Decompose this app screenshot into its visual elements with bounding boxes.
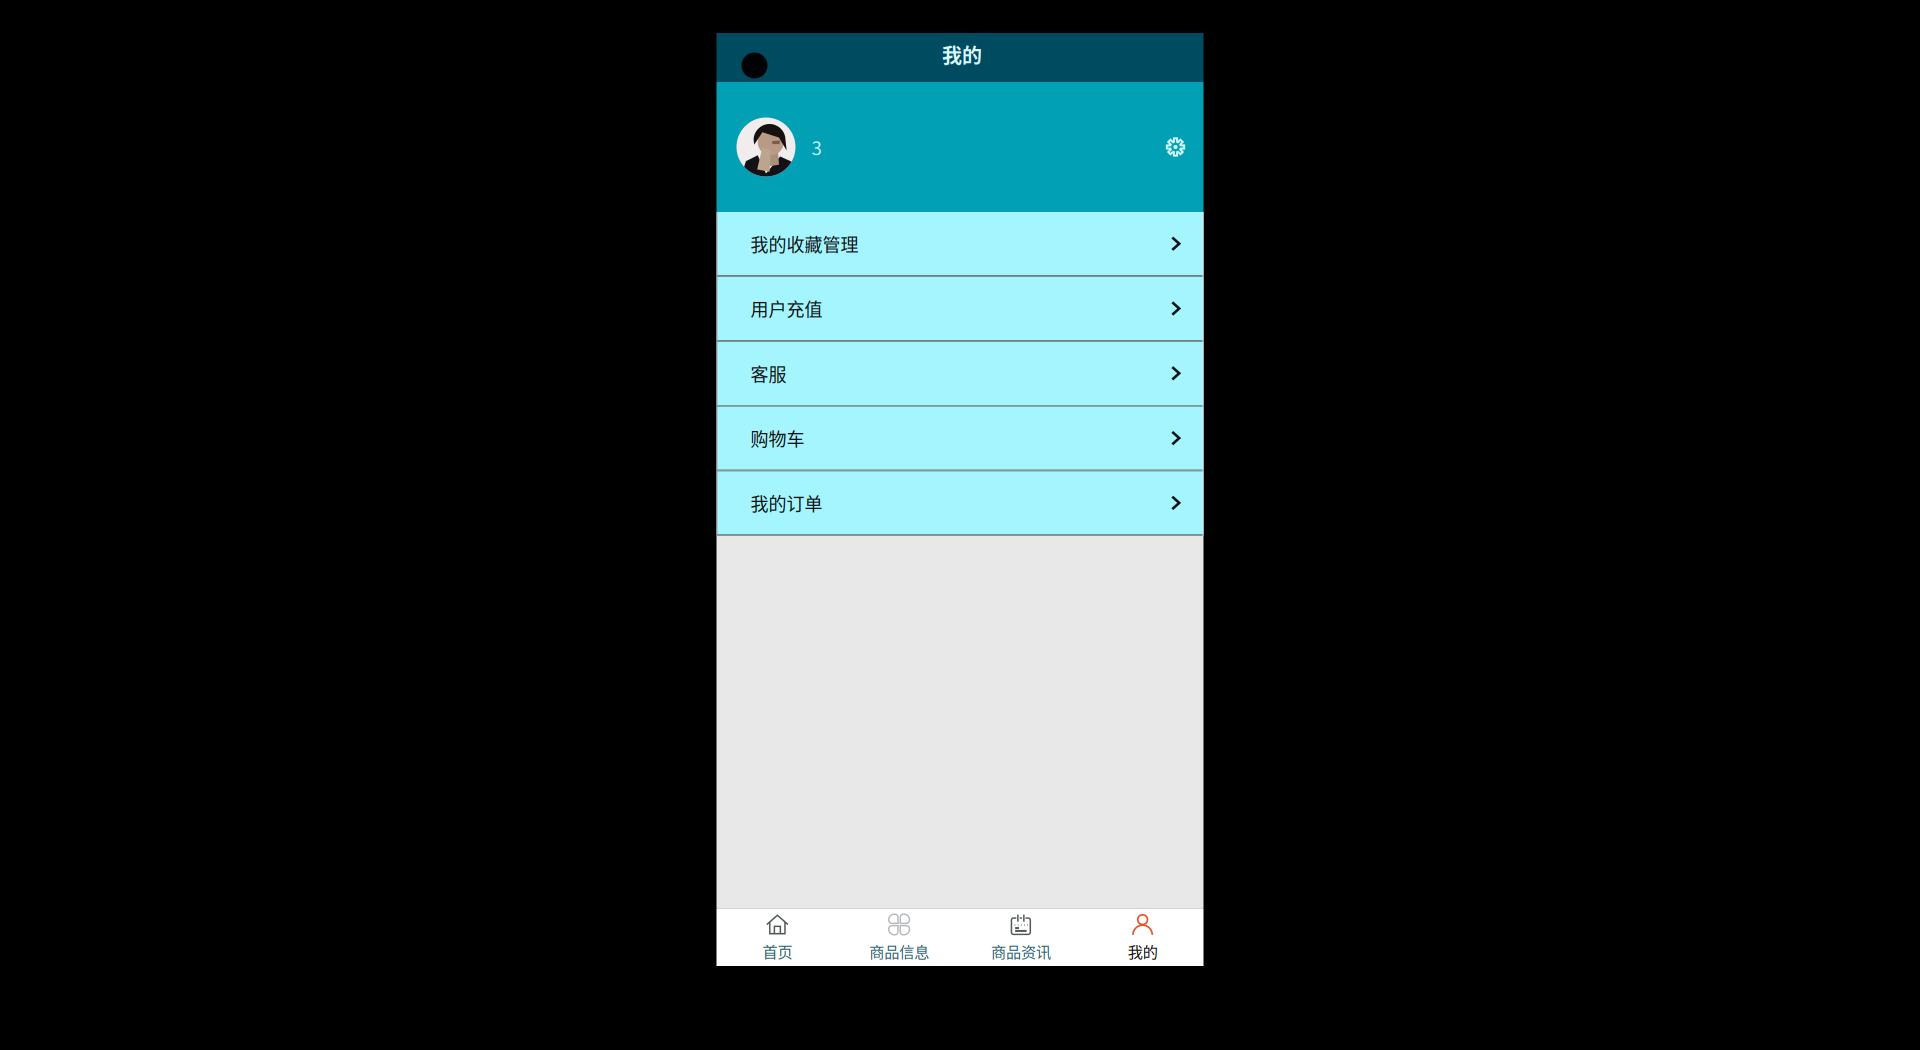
staticText: 客服 <box>750 360 786 386</box>
button[interactable]: 首页 <box>716 909 838 966</box>
button[interactable]: Settings <box>1165 137 1185 157</box>
button[interactable]: Back <box>716 33 792 82</box>
staticText: 我的订单 <box>750 490 822 516</box>
button[interactable]: 我的收藏管理 <box>716 212 1203 275</box>
staticText: 我的 <box>942 40 982 69</box>
staticText: 3 <box>811 133 821 160</box>
button[interactable]: Profile photo <box>736 117 795 176</box>
button[interactable]: 购物车 <box>716 406 1203 470</box>
button[interactable]: 商品信息 <box>838 909 960 966</box>
staticText: 商品资讯 <box>991 940 1051 962</box>
button[interactable]: 用户充值 <box>716 277 1203 340</box>
staticText: 购物车 <box>750 425 804 451</box>
button[interactable]: 我的订单 <box>716 471 1203 535</box>
button[interactable]: 商品资讯 <box>960 909 1082 966</box>
staticText: 我的 <box>1128 940 1158 962</box>
button[interactable]: 我的 <box>1082 909 1204 966</box>
staticText: 首页 <box>762 940 792 962</box>
staticText: 用户充值 <box>750 295 822 322</box>
staticText: 商品信息 <box>869 940 929 962</box>
button[interactable]: 客服 <box>716 342 1203 405</box>
staticText: 我的收藏管理 <box>750 231 858 257</box>
